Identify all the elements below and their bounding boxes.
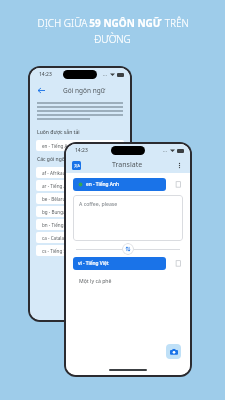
staticText: 14:23 [39, 71, 52, 78]
button[interactable]: en - Tiếng Anh [73, 178, 166, 191]
staticText: 59 NGÔN NGỮ [89, 16, 162, 30]
staticText: vi - Tiếng Việt [78, 260, 109, 267]
staticText: af - Afrikaans [42, 170, 71, 176]
staticText: ar - Tiếng Ả Rập [42, 183, 76, 189]
staticText: ... [103, 71, 108, 78]
staticText: en - Tiếng Anh [42, 143, 74, 149]
button[interactable]: Back [30, 81, 130, 99]
staticText: Các gói ngôn ngữ có [37, 156, 86, 163]
staticText: Translate [112, 160, 143, 170]
staticText: 文A [74, 163, 80, 168]
button[interactable]: More options [175, 161, 184, 170]
button[interactable]: af - Afrikaans [36, 167, 124, 178]
button[interactable]: Swap languages [122, 243, 134, 255]
staticText: DỊCH GIỮA [36, 16, 89, 30]
button[interactable]: ca - Catalan [36, 232, 124, 243]
staticText: be - Bêlarut [42, 196, 68, 202]
button[interactable]: en - Tiếng Anh [36, 140, 124, 151]
button[interactable]: be - Bêlarut [36, 193, 124, 204]
button[interactable]: Back [36, 85, 46, 95]
staticText: A coffee, please [79, 200, 118, 207]
staticText: ĐƯỜNG [94, 32, 131, 46]
staticText: Một ly cà phê [79, 277, 112, 284]
staticText: en - Tiếng Anh [86, 181, 119, 188]
staticText: ... [163, 147, 168, 154]
button[interactable]: Camera translate [166, 344, 181, 359]
button[interactable]: vi - Tiếng Việt [73, 257, 166, 270]
button[interactable]: A coffee, please [73, 195, 183, 241]
staticText: Gói ngôn ngữ [63, 86, 106, 95]
staticText: TRÊN [162, 16, 189, 30]
staticText: ca - Catalan [42, 235, 67, 241]
button[interactable]: bg - Bungari [36, 206, 124, 217]
staticText: 14:23 [75, 147, 88, 154]
button[interactable]: cs - Tiếng Séc [36, 245, 124, 256]
staticText: Luôn được sẵn tải [37, 129, 80, 136]
button[interactable]: Copy translation [172, 258, 183, 269]
staticText: bn - Tiếng Bengali [42, 222, 81, 228]
button[interactable]: Copy [172, 179, 183, 190]
staticText: bg - Bungari [42, 209, 69, 215]
button[interactable]: Translate icon [72, 161, 81, 170]
button[interactable]: ar - Tiếng Ả Rập [36, 180, 124, 191]
staticText: cs - Tiếng Séc [42, 248, 71, 254]
button[interactable]: bn - Tiếng Bengali [36, 219, 124, 230]
